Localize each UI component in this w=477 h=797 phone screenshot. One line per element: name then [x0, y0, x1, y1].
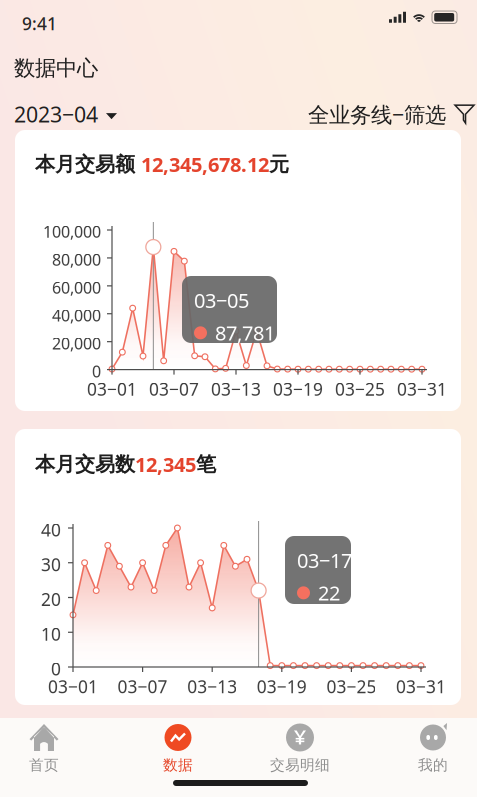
staticText: 03−31 — [397, 378, 447, 401]
staticText: 20,000 — [52, 333, 101, 354]
staticText: 87,781 — [215, 320, 275, 346]
staticText: 03−01 — [87, 378, 137, 401]
button[interactable]: 我的 — [383, 724, 477, 774]
button[interactable]: 首页 — [0, 724, 94, 774]
staticText: 10 — [41, 622, 61, 645]
button[interactable]: 全业务线−筛选 — [294, 93, 477, 135]
staticText: 元 — [269, 152, 289, 177]
staticText: 数据 — [163, 756, 193, 774]
staticText: 本月交易额 — [35, 152, 141, 177]
staticText: 100,000 — [43, 221, 101, 242]
staticText: 03−25 — [335, 378, 385, 401]
staticText: 03−19 — [257, 675, 307, 698]
staticText: 03−13 — [211, 378, 261, 401]
staticText: 9:41 — [22, 12, 57, 35]
staticText: 03−31 — [396, 675, 446, 698]
staticText: 03−01 — [48, 675, 98, 698]
staticText: 30 — [41, 553, 61, 576]
staticText: 80,000 — [52, 249, 101, 270]
staticText: 40,000 — [52, 305, 101, 326]
staticText: 0 — [51, 657, 61, 680]
staticText: 03−07 — [149, 378, 199, 401]
staticText: 笔 — [196, 452, 216, 477]
button[interactable]: 数据 — [128, 724, 228, 774]
staticText: 数据中心 — [14, 55, 98, 81]
staticText: 我的 — [418, 756, 448, 774]
staticText: 03−25 — [326, 675, 376, 698]
button[interactable]: 2023−04 — [0, 93, 131, 135]
button[interactable]: 交易明细 — [250, 724, 350, 774]
staticText: 03−13 — [187, 675, 237, 698]
staticText: 2023−04 — [14, 100, 98, 128]
staticText: 本月交易数 — [35, 452, 135, 477]
staticText: 03−17 — [297, 547, 352, 574]
staticText: 03−19 — [273, 378, 323, 401]
staticText: 12,345 — [135, 451, 196, 478]
staticText: 03−05 — [194, 287, 249, 314]
staticText: 交易明细 — [270, 756, 330, 774]
staticText: 40 — [41, 518, 61, 541]
staticText: 全业务线−筛选 — [308, 100, 446, 128]
staticText: 20 — [41, 588, 61, 611]
staticText: 首页 — [29, 756, 59, 774]
staticText: 22 — [318, 580, 340, 606]
staticText: 03−07 — [118, 675, 168, 698]
staticText: 12,345,678.12 — [141, 151, 269, 178]
staticText: 0 — [92, 361, 101, 382]
staticText: 60,000 — [52, 277, 101, 298]
